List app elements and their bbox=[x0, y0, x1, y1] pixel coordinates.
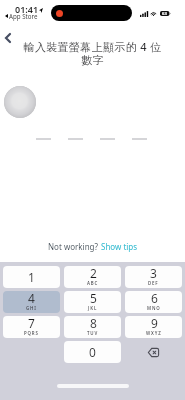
button[interactable]: Delete bbox=[125, 341, 182, 363]
staticText: 6 bbox=[151, 291, 158, 306]
staticText: 4 bbox=[28, 291, 35, 306]
button[interactable]: 2 bbox=[64, 266, 121, 288]
staticText: 01:41 bbox=[15, 3, 39, 15]
button[interactable]: Show tips bbox=[101, 241, 138, 252]
staticText: 2 bbox=[90, 266, 97, 281]
staticText: GHI bbox=[26, 305, 37, 311]
button[interactable]: 5 bbox=[64, 291, 121, 313]
staticText: 輸入裝置螢幕上顯示的 4 位數字 bbox=[20, 39, 165, 67]
staticText: 63 bbox=[162, 11, 167, 17]
staticText: TUV bbox=[87, 330, 99, 336]
staticText: PQRS bbox=[24, 330, 39, 336]
staticText: Not working? bbox=[48, 241, 101, 252]
button[interactable]: 7 bbox=[3, 316, 60, 338]
staticText: 1 bbox=[28, 269, 35, 285]
staticText: App Store bbox=[9, 12, 38, 20]
staticText: JKL bbox=[88, 305, 98, 311]
staticText: 3 bbox=[150, 266, 157, 281]
button[interactable]: 3 bbox=[125, 266, 182, 288]
button[interactable]: Back bbox=[0, 29, 17, 47]
staticText: WXYZ bbox=[146, 330, 162, 336]
staticText: 5 bbox=[90, 291, 97, 306]
staticText: MNO bbox=[147, 305, 161, 311]
staticText: Show tips bbox=[101, 241, 138, 252]
staticText: DEF bbox=[148, 280, 159, 286]
button[interactable]: 0 bbox=[64, 341, 121, 363]
button[interactable]: 1 bbox=[3, 266, 60, 288]
staticText: 0 bbox=[89, 344, 96, 360]
staticText: ABC bbox=[87, 280, 99, 286]
staticText: 7 bbox=[28, 316, 35, 331]
staticText: 9 bbox=[151, 316, 158, 331]
staticText: 8 bbox=[90, 316, 97, 331]
button[interactable]: 9 bbox=[125, 316, 182, 338]
button[interactable]: 6 bbox=[125, 291, 182, 313]
button[interactable]: 4 bbox=[3, 291, 60, 313]
button[interactable]: 8 bbox=[64, 316, 121, 338]
